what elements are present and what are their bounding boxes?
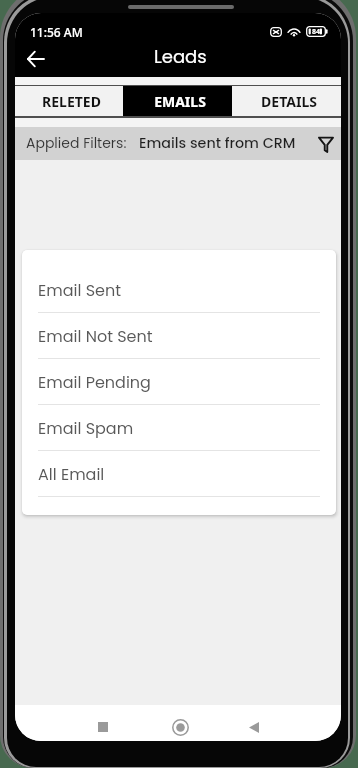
staticText: Leads [154, 44, 207, 69]
button[interactable]: Email Pending [22, 359, 336, 405]
staticText: DETAILS [261, 92, 317, 111]
staticText: Email Not Sent [38, 325, 153, 347]
staticText: Email Sent [38, 279, 122, 301]
button[interactable]: Recent apps [86, 710, 120, 741]
staticText: RELETED [42, 92, 101, 111]
button[interactable]: DETAILS [232, 86, 341, 116]
button[interactable]: Back [237, 710, 271, 741]
staticText: All Email [38, 463, 105, 485]
button[interactable]: Email Spam [22, 405, 336, 451]
button[interactable]: Email Not Sent [22, 313, 336, 359]
staticText: EMAILS [154, 92, 206, 111]
button[interactable]: Email Sent [22, 267, 336, 313]
button[interactable]: Back [19, 43, 51, 75]
staticText: Email Pending [38, 371, 151, 393]
button[interactable]: RELETED [15, 86, 123, 116]
button[interactable]: All Email [22, 451, 336, 497]
button[interactable]: Filter [313, 131, 339, 157]
staticText: Emails sent from CRM [139, 133, 296, 153]
staticText: Applied Filters: [26, 133, 127, 153]
staticText: 11:56 AM [30, 24, 83, 40]
button[interactable]: EMAILS [123, 86, 232, 116]
button[interactable]: Home [163, 710, 197, 741]
staticText: 84 [312, 27, 321, 37]
staticText: Email Spam [38, 417, 134, 439]
